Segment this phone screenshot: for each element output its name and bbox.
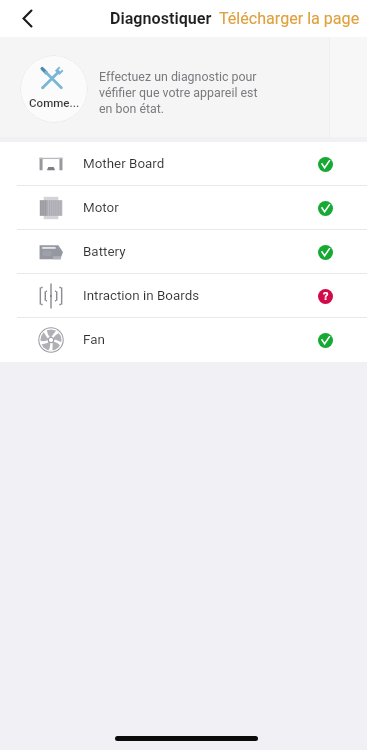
staticText: Fan: [83, 332, 105, 348]
staticText: Mother Board: [83, 156, 165, 172]
staticText: Battery: [83, 244, 126, 260]
staticText: Effectuez un diagnostic pour véfifier qu…: [99, 69, 261, 116]
button[interactable]: Télécharger la page: [219, 9, 360, 28]
staticText: Intraction in Boards: [83, 288, 200, 304]
staticText: Motor: [83, 200, 119, 216]
button[interactable]: Motor: [0, 186, 367, 230]
button[interactable]: Back: [10, 1, 45, 36]
button[interactable]: Battery: [0, 230, 367, 274]
button[interactable]: Fan: [0, 318, 367, 362]
staticText: ?: [323, 290, 329, 303]
staticText: Comme...: [29, 96, 80, 110]
button[interactable]: Mother Board: [0, 142, 367, 186]
staticText: Diagnostiquer: [110, 9, 212, 28]
button[interactable]: Intraction in Boards: [0, 274, 367, 318]
button[interactable]: Comme...: [20, 55, 88, 123]
